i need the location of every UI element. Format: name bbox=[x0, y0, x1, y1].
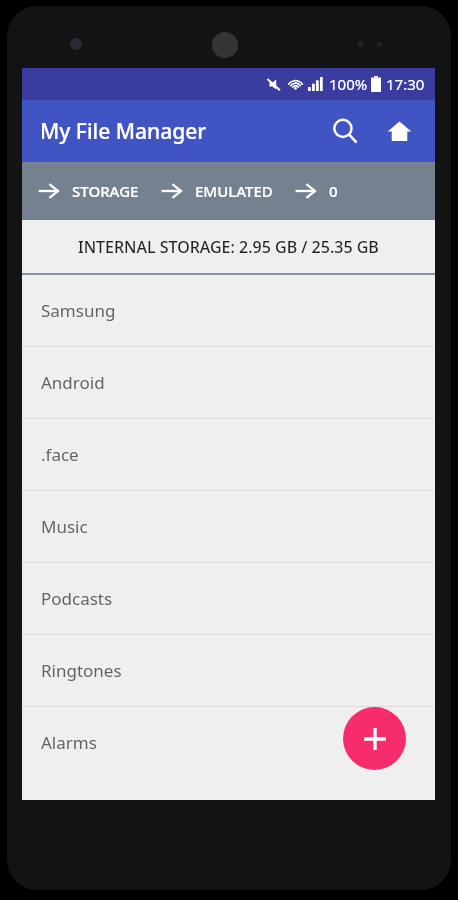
button[interactable]: Android bbox=[22, 347, 435, 418]
staticText: EMULATED bbox=[195, 181, 273, 201]
button[interactable]: Add new bbox=[343, 707, 406, 770]
staticText: My File Manager bbox=[40, 117, 207, 146]
button[interactable]: Alarms bbox=[22, 707, 435, 778]
button[interactable]: Podcasts bbox=[22, 563, 435, 634]
staticText: 100% bbox=[329, 74, 368, 94]
button[interactable]: Home bbox=[375, 107, 423, 155]
button[interactable]: 0 bbox=[295, 174, 338, 208]
staticText: STORAGE bbox=[72, 181, 139, 201]
staticText: Samsung bbox=[41, 299, 116, 322]
staticText: Ringtones bbox=[41, 659, 122, 682]
staticText: Podcasts bbox=[41, 587, 113, 610]
staticText: 0 bbox=[329, 181, 338, 201]
staticText: 17:30 bbox=[386, 74, 425, 94]
button[interactable]: STORAGE bbox=[38, 174, 139, 208]
button[interactable]: Samsung bbox=[22, 275, 435, 346]
button[interactable]: Ringtones bbox=[22, 635, 435, 706]
button[interactable]: .face bbox=[22, 419, 435, 490]
button[interactable]: Music bbox=[22, 491, 435, 562]
button[interactable]: Search bbox=[321, 107, 369, 155]
staticText: Music bbox=[41, 515, 88, 538]
staticText: INTERNAL STORAGE: 2.95 GB / 25.35 GB bbox=[78, 236, 379, 258]
staticText: Alarms bbox=[41, 731, 97, 754]
button[interactable]: EMULATED bbox=[161, 174, 273, 208]
staticText: .face bbox=[41, 443, 79, 466]
staticText: Android bbox=[41, 371, 105, 394]
